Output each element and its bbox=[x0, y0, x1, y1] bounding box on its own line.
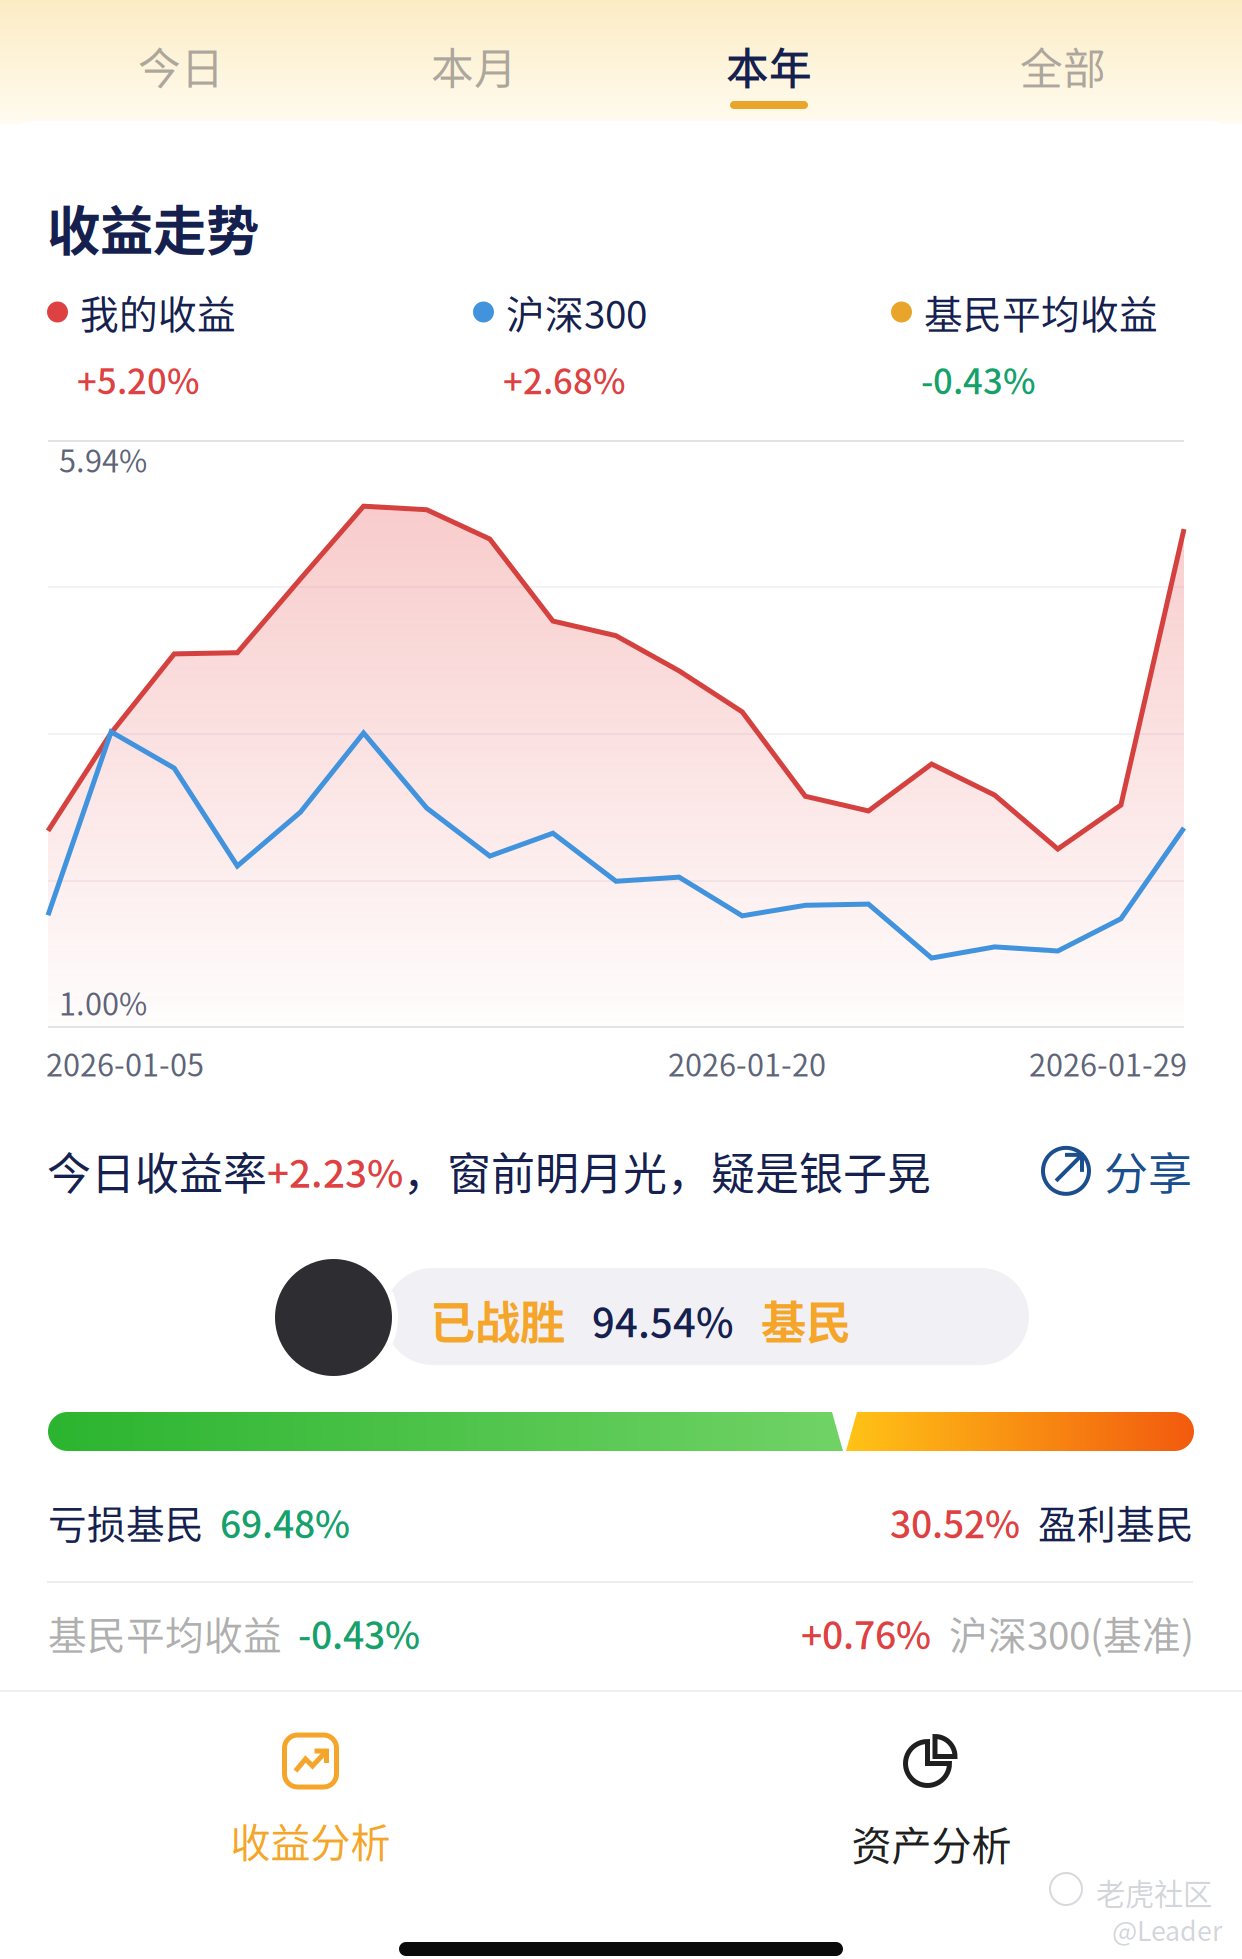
staticText: 1.00% bbox=[59, 980, 147, 1024]
staticText: 收益走势 bbox=[47, 189, 259, 266]
button[interactable]: 本年 bbox=[619, 28, 913, 118]
staticText: 今日 bbox=[138, 35, 224, 97]
staticText: ，窗前明月光，疑是银子晃 bbox=[403, 1139, 931, 1203]
staticText: 沪深300 bbox=[506, 284, 647, 340]
staticText: 分享 bbox=[1104, 1139, 1192, 1203]
staticText: 基民平均收益 bbox=[924, 284, 1158, 340]
staticText: -0.43% bbox=[921, 354, 1036, 404]
staticText: 全部 bbox=[1020, 35, 1106, 97]
staticText: 盈利基民 bbox=[1020, 1494, 1194, 1550]
button[interactable]: 分享 bbox=[1044, 1139, 1192, 1203]
staticText: 资产分析 bbox=[851, 1814, 1011, 1872]
button[interactable]: 资产分析 bbox=[621, 1732, 1242, 1872]
staticText: 老虎社区 bbox=[1096, 1871, 1212, 1913]
staticText: 30.52% bbox=[890, 1495, 1020, 1549]
staticText: 沪深300(基准) bbox=[931, 1605, 1194, 1661]
staticText: 2026-01-29 bbox=[1029, 1041, 1187, 1085]
staticText: +0.76% bbox=[801, 1606, 931, 1660]
staticText: 本年 bbox=[726, 35, 812, 97]
button[interactable]: 收益分析 bbox=[0, 1735, 621, 1869]
staticText: 基民平均收益 bbox=[48, 1605, 282, 1661]
button[interactable]: 今日 bbox=[31, 28, 325, 118]
staticText: 今日收益率 bbox=[47, 1139, 267, 1203]
staticText: +5.20% bbox=[77, 354, 200, 404]
staticText: 94.54% bbox=[565, 1291, 761, 1349]
staticText: 5.94% bbox=[59, 437, 147, 481]
staticText: 收益分析 bbox=[230, 1811, 390, 1869]
staticText: 已战胜 bbox=[430, 1287, 565, 1353]
staticText: 本月 bbox=[431, 35, 517, 97]
staticText: 2026-01-05 bbox=[46, 1041, 204, 1085]
staticText: 我的收益 bbox=[80, 284, 236, 340]
button[interactable]: 本月 bbox=[324, 28, 618, 118]
staticText: -0.43% bbox=[282, 1606, 420, 1660]
staticText: 基民 bbox=[761, 1287, 851, 1353]
staticText: +2.68% bbox=[503, 354, 626, 404]
button[interactable]: 全部 bbox=[913, 28, 1207, 118]
staticText: @Leader bbox=[1112, 1910, 1222, 1949]
staticText: 亏损基民 bbox=[48, 1494, 204, 1550]
staticText: +2.23% bbox=[267, 1143, 403, 1199]
staticText: 2026-01-20 bbox=[668, 1041, 826, 1085]
staticText: 69.48% bbox=[204, 1495, 350, 1549]
